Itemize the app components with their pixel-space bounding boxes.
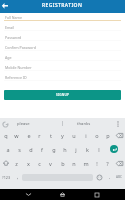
staticText: q [4, 132, 8, 139]
staticText: Age [5, 55, 12, 60]
button[interactable]: l [93, 142, 104, 156]
staticText: Reference ID [5, 75, 27, 80]
button[interactable]: j [70, 142, 81, 156]
staticText: . [109, 174, 111, 181]
button[interactable]: . [105, 170, 115, 184]
button[interactable]: b [57, 156, 68, 170]
staticText: s [18, 146, 21, 153]
staticText: r [38, 132, 41, 139]
staticText: ? [106, 160, 109, 167]
button[interactable]: Reference ID [0, 73, 125, 83]
staticText: g [52, 146, 56, 153]
button[interactable]: r [34, 128, 45, 142]
button[interactable]: Full Name [0, 13, 125, 23]
staticText: p [106, 132, 110, 139]
staticText: j [75, 146, 77, 153]
button[interactable]: Switch language [114, 170, 125, 184]
button[interactable]: x [23, 156, 34, 170]
button[interactable]: ?123 [0, 170, 13, 184]
staticText: ?123 [2, 175, 11, 180]
button[interactable]: d [25, 142, 36, 156]
staticText: a [6, 146, 10, 153]
staticText: Email [5, 25, 15, 30]
button[interactable]: n [68, 156, 79, 170]
button[interactable]: s [14, 142, 25, 156]
staticText: i [85, 132, 87, 139]
staticText: u [72, 132, 76, 139]
staticText: x [27, 160, 30, 167]
button[interactable]: f [36, 142, 47, 156]
staticText: REGISTRATION [42, 2, 83, 9]
button[interactable]: y [57, 128, 68, 142]
button[interactable]: Age [0, 53, 125, 63]
button[interactable]: Back [0, 1, 10, 11]
staticText: k [86, 146, 89, 153]
button[interactable]: t [45, 128, 56, 142]
button[interactable]: Backspace [114, 128, 125, 142]
staticText: Full Name [5, 15, 23, 20]
staticText: m [83, 160, 89, 167]
staticText: t [50, 132, 52, 139]
button[interactable]: ? [102, 156, 113, 170]
button[interactable]: z [11, 156, 22, 170]
staticText: ! [96, 160, 98, 167]
button[interactable]: Enter [110, 145, 118, 153]
staticText: Password [5, 35, 22, 40]
button[interactable]: SIGNUP [4, 90, 121, 100]
button[interactable]: Mobile Number [0, 63, 125, 73]
button[interactable]: Password [0, 33, 125, 43]
button[interactable]: thanks [77, 121, 91, 127]
button[interactable]: g [48, 142, 59, 156]
button[interactable]: k [82, 142, 93, 156]
staticText: b [61, 160, 65, 167]
button[interactable]: m [80, 156, 91, 170]
button[interactable]: q [0, 128, 11, 142]
button[interactable]: Recents [91, 189, 102, 200]
button[interactable]: p [102, 128, 113, 142]
button[interactable]: Emoji [94, 170, 105, 184]
button[interactable]: c [34, 156, 45, 170]
button[interactable]: e [23, 128, 34, 142]
staticText: d [29, 146, 33, 153]
button[interactable]: ! [91, 156, 102, 170]
staticText: , [17, 174, 19, 181]
staticText: z [15, 160, 18, 167]
button[interactable]: please [17, 121, 30, 127]
staticText: h [63, 146, 67, 153]
staticText: l [98, 146, 100, 153]
staticText: w [14, 132, 19, 139]
staticText: y [61, 132, 64, 139]
staticText: f [41, 146, 43, 153]
button[interactable]: h [59, 142, 70, 156]
button[interactable]: Google [2, 121, 9, 128]
button[interactable]: w [11, 128, 22, 142]
button[interactable]: u [68, 128, 79, 142]
button[interactable]: , [13, 170, 23, 184]
staticText: Confirm Password [5, 45, 36, 50]
button[interactable]: Backspace [114, 156, 125, 170]
button[interactable]: v [45, 156, 56, 170]
button[interactable]: Shift [0, 156, 11, 170]
button[interactable]: a [2, 142, 13, 156]
button[interactable]: Home [57, 189, 68, 200]
staticText: c [38, 160, 41, 167]
staticText: v [49, 160, 52, 167]
button[interactable]: Confirm Password [0, 43, 125, 53]
staticText: SIGNUP [56, 93, 70, 97]
staticText: Mobile Number [5, 65, 32, 70]
staticText: n [72, 160, 76, 167]
button[interactable]: o [91, 128, 102, 142]
button[interactable]: Back [23, 189, 34, 200]
staticText: e [27, 132, 31, 139]
staticText: ABC [116, 175, 123, 179]
button[interactable]: i [80, 128, 91, 142]
button[interactable]: More options [114, 120, 122, 128]
button[interactable]: Email [0, 23, 125, 33]
staticText: o [95, 132, 99, 139]
